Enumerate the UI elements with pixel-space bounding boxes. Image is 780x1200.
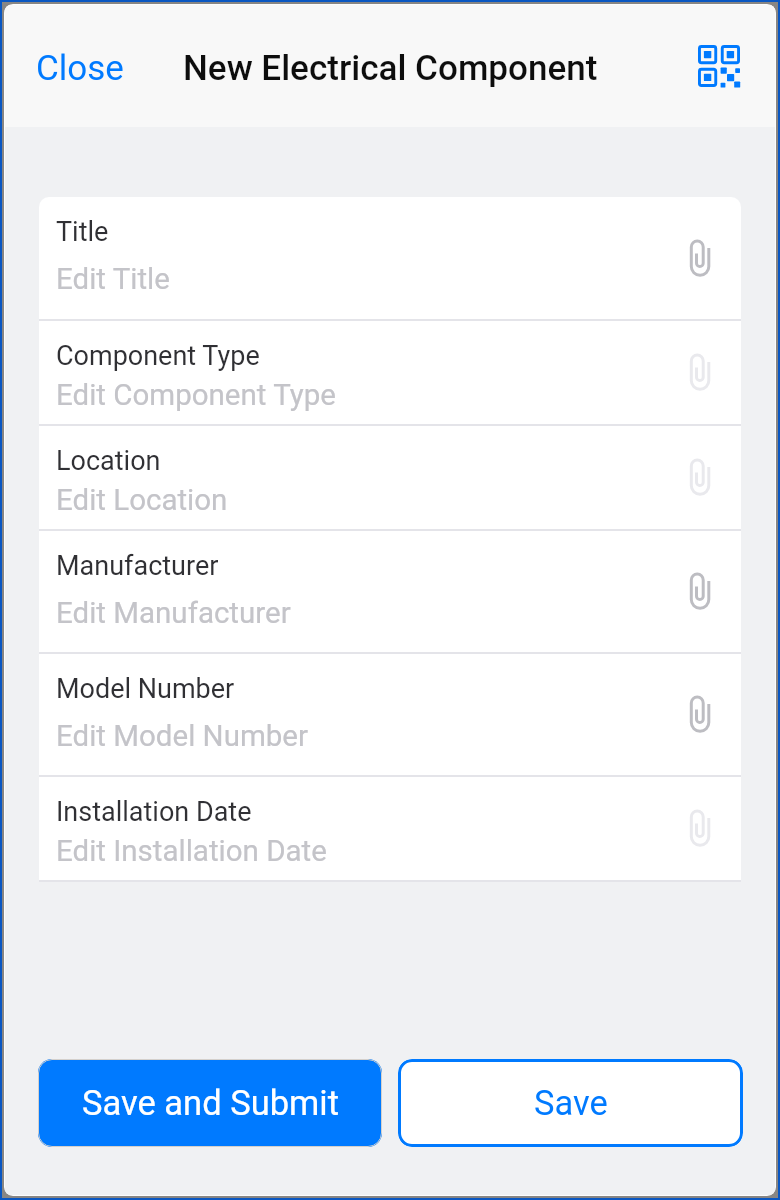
staticText: Title <box>56 216 109 248</box>
staticText: Edit Model Number <box>56 719 309 754</box>
button[interactable]: Title <box>39 197 741 319</box>
staticText: Location <box>56 445 161 477</box>
button[interactable]: Location <box>39 426 741 529</box>
staticText: Save and Submit <box>82 1083 339 1123</box>
staticText: New Electrical Component <box>183 48 598 89</box>
button[interactable]: Scan QR code <box>692 39 746 93</box>
staticText: Component Type <box>56 340 260 372</box>
staticText: Edit Title <box>56 262 170 297</box>
staticText: Edit Component Type <box>56 378 336 413</box>
button[interactable]: Model Number <box>39 654 741 775</box>
button[interactable]: Close <box>5 34 155 103</box>
button[interactable]: Manufacturer <box>39 531 741 652</box>
staticText: Edit Installation Date <box>56 834 327 869</box>
staticText: Manufacturer <box>56 550 219 582</box>
staticText: Edit Location <box>56 483 228 518</box>
button[interactable]: Installation Date <box>39 777 741 880</box>
staticText: Installation Date <box>56 796 252 828</box>
button[interactable]: Component Type <box>39 321 741 424</box>
staticText: Model Number <box>56 673 235 705</box>
staticText: Edit Manufacturer <box>56 596 291 631</box>
button[interactable]: Save <box>398 1059 743 1147</box>
staticText: Save <box>534 1083 608 1123</box>
button[interactable]: Save and Submit <box>38 1059 382 1147</box>
